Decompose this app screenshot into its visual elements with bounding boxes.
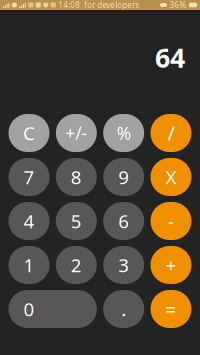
button[interactable]: 1 [8, 246, 49, 284]
button[interactable]: 2 [56, 246, 97, 284]
staticText: 1 [23, 253, 34, 277]
button[interactable]: % [103, 114, 144, 152]
button[interactable]: 0 [8, 290, 97, 328]
button[interactable]: / [150, 114, 191, 152]
staticText: 8 [71, 165, 82, 189]
staticText: X [165, 165, 176, 189]
button[interactable]: = [150, 290, 191, 328]
button[interactable]: X [150, 158, 191, 196]
staticText: 36% [169, 0, 186, 10]
staticText: C [23, 121, 35, 145]
staticText: +/- [65, 121, 87, 144]
staticText: 7 [23, 165, 34, 189]
button[interactable]: 8 [56, 158, 97, 196]
staticText: + [165, 253, 176, 277]
button[interactable]: 4 [8, 202, 49, 240]
staticText: 0 [23, 297, 34, 321]
staticText: % [117, 121, 131, 144]
staticText: 14:08 for developers [58, 0, 139, 10]
staticText: - [168, 209, 174, 233]
staticText: / [167, 120, 174, 146]
staticText: 3 [118, 253, 129, 277]
staticText: 4 [23, 209, 34, 233]
staticText: 9 [118, 165, 129, 189]
button[interactable]: + [150, 246, 191, 284]
staticText: 64 [155, 40, 185, 75]
button[interactable]: 5 [56, 202, 97, 240]
button[interactable]: +/- [56, 114, 97, 152]
button[interactable]: 9 [103, 158, 144, 196]
button[interactable]: 3 [103, 246, 144, 284]
staticText: . [121, 297, 126, 321]
staticText: 6 [118, 209, 129, 233]
staticText: 2 [71, 253, 82, 277]
button[interactable]: - [150, 202, 191, 240]
staticText: 5 [71, 209, 82, 233]
button[interactable]: . [103, 290, 144, 328]
staticText: = [165, 297, 176, 321]
button[interactable]: C [8, 114, 49, 152]
button[interactable]: 6 [103, 202, 144, 240]
button[interactable]: 7 [8, 158, 49, 196]
